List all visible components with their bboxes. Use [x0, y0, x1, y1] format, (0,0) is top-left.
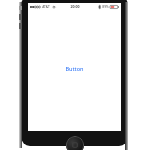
staticText: 89% — [102, 5, 109, 9]
staticText: AT&T — [42, 5, 50, 9]
staticText: 20:00 — [70, 4, 80, 9]
button[interactable]: Home — [66, 136, 84, 150]
staticText: Button — [65, 65, 84, 72]
button[interactable]: Button — [61, 63, 88, 74]
